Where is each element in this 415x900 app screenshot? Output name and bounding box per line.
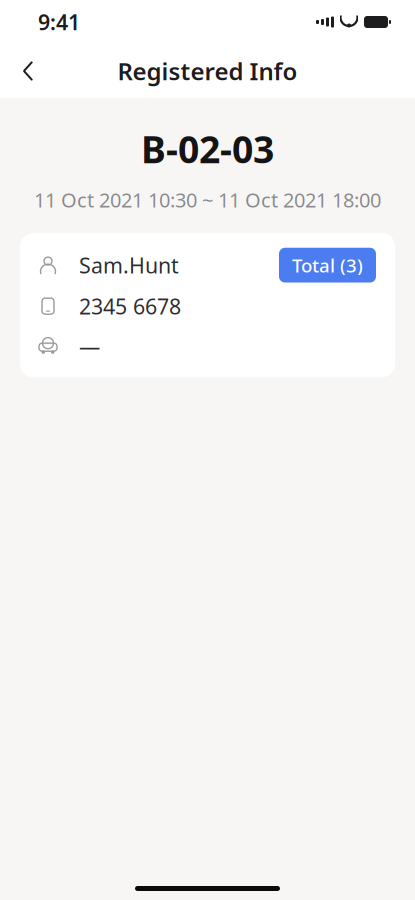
staticText: Registered Info bbox=[117, 55, 297, 87]
staticText: Sam.Hunt bbox=[79, 251, 179, 279]
staticText: Total (3) bbox=[292, 253, 363, 277]
staticText: 2345 6678 bbox=[79, 292, 181, 320]
staticText: B-02-03 bbox=[141, 124, 274, 174]
button[interactable]: Back bbox=[6, 49, 50, 93]
button[interactable]: Total (3) bbox=[279, 248, 376, 282]
staticText: 9:41 bbox=[38, 8, 80, 36]
staticText: — bbox=[79, 332, 100, 360]
staticText: 11 Oct 2021 10:30 ~ 11 Oct 2021 18:00 bbox=[34, 187, 381, 213]
